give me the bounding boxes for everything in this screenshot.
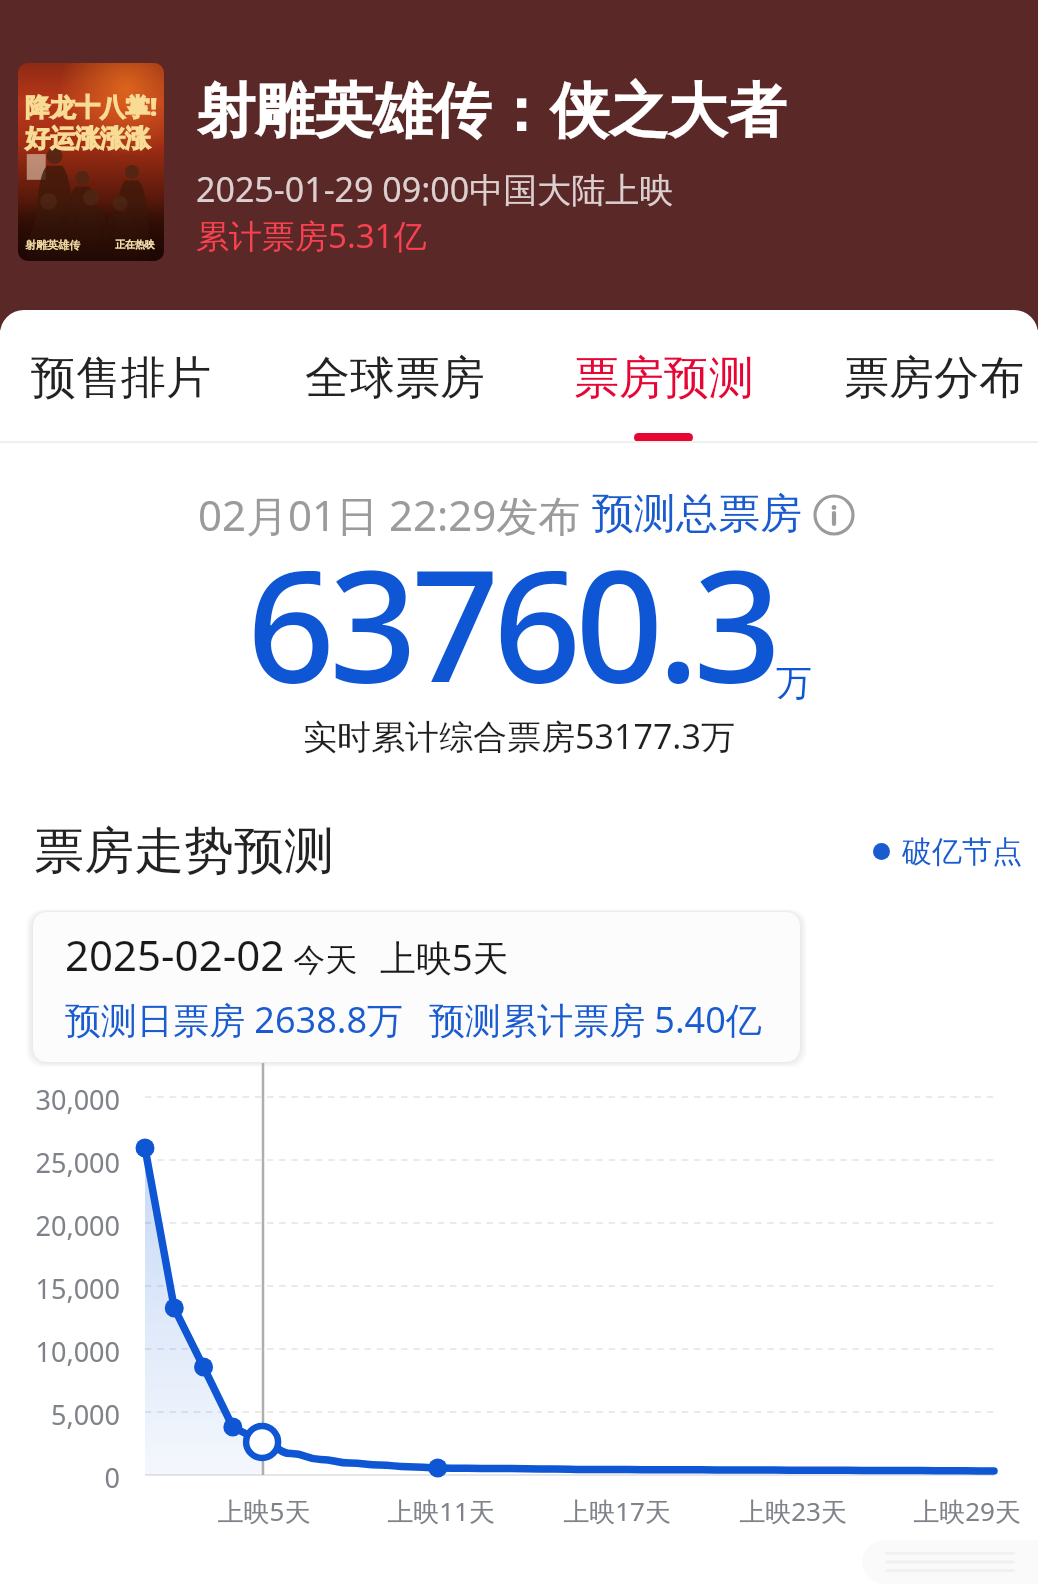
button[interactable]: 预售排片 [11,350,231,446]
staticText: 票房预测 [554,350,774,407]
button[interactable]: 更多 [862,1540,1038,1584]
staticText: 02月01日 22:29发布 [198,486,592,543]
staticText: 票房走势预测 [34,820,334,883]
staticText: 15,000 [0,1270,120,1307]
staticText: 预测总票房 [592,488,802,541]
staticText: 降龙十八掌! [25,89,158,123]
button[interactable]: 全球票房 [285,350,505,446]
staticText: 上映23天 [703,1493,883,1529]
staticText: 实时累计综合票房53177.3万 [0,713,1038,759]
staticText: 25,000 [0,1144,120,1181]
staticText: 0 [0,1459,120,1496]
staticText: 2025-02-02 [65,926,285,983]
staticText: 全球票房 [285,350,505,407]
staticText: 30,000 [0,1081,120,1118]
staticText: 万 [776,660,812,705]
staticText: 预测累计票房 5.40亿 [429,995,762,1044]
staticText: 上映5天 [174,1493,354,1529]
staticText: 2025-01-29 09:00中国大陆上映 [196,166,674,212]
staticText: 预售排片 [11,350,231,407]
staticText: 累计票房5.31亿 [196,213,427,258]
staticText: 射雕英雄传 [25,238,80,252]
button[interactable]: 票房预测 [554,350,774,446]
button[interactable]: 票房分布 [824,350,1038,446]
staticText: 10,000 [0,1333,120,1370]
staticText: 预测日票房 2638.8万 [65,995,403,1044]
staticText: 63760.3 [247,517,776,727]
staticText: 今天 [285,937,358,981]
staticText: 票房分布 [824,350,1038,407]
staticText: 射雕英雄传：侠之大者 [196,74,786,148]
staticText: 5,000 [0,1396,120,1433]
staticText: 20,000 [0,1207,120,1244]
staticText: 好运涨涨涨 [25,123,150,154]
button[interactable]: 说明 [814,495,854,535]
staticText: 上映5天 [380,933,509,982]
staticText: 破亿节点 [902,833,1022,871]
staticText: 上映11天 [351,1493,531,1529]
staticText: 正在热映 [115,238,155,251]
staticText: 上映29天 [877,1493,1038,1529]
staticText: 上映17天 [527,1493,707,1529]
